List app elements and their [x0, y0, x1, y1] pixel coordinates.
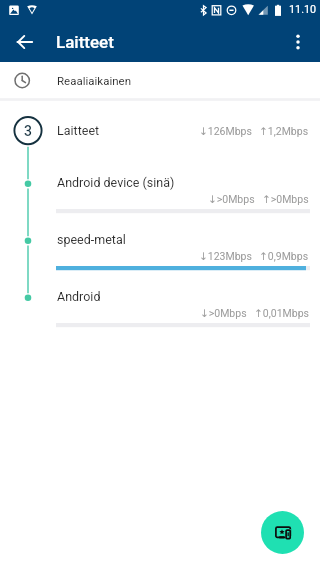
button[interactable]: speed-metal: [0, 228, 320, 285]
staticText: Laitteet: [57, 123, 100, 138]
staticText: 3: [24, 123, 32, 139]
staticText: ↓>0Mbps: [208, 193, 255, 205]
staticText: ↑0,01Mbps: [254, 307, 309, 319]
staticText: Android device (sinä): [57, 175, 175, 190]
staticText: ↑1,2Mbps: [259, 125, 309, 137]
staticText: ↓>0Mbps: [200, 307, 247, 319]
staticText: ↑0,9Mbps: [259, 250, 309, 262]
button[interactable]: Back: [5, 22, 45, 62]
staticText: 11.10: [289, 3, 317, 16]
staticText: ↑>0Mbps: [262, 193, 309, 205]
staticText: speed-metal: [57, 232, 126, 247]
button[interactable]: Cast to device: [261, 511, 304, 554]
staticText: ↓126Mbps: [199, 125, 252, 137]
button[interactable]: Laitteet: [0, 103, 320, 158]
button[interactable]: Android: [0, 285, 320, 342]
button[interactable]: Reaaliaikainen: [0, 62, 320, 98]
button[interactable]: Android device (sinä): [0, 171, 320, 228]
staticText: Reaaliaikainen: [57, 74, 132, 87]
staticText: Android: [57, 289, 101, 304]
staticText: Laitteet: [56, 32, 114, 52]
button[interactable]: More options: [278, 22, 318, 62]
staticText: ↓123Mbps: [199, 250, 252, 262]
